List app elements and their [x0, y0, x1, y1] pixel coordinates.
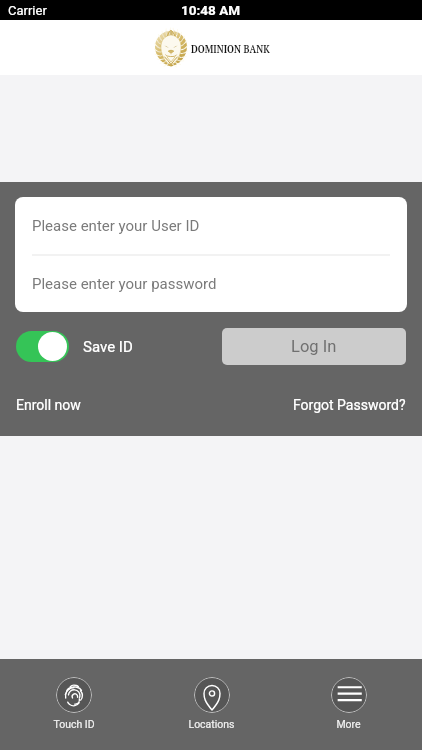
- button[interactable]: Please enter your password: [15, 256, 407, 312]
- button[interactable]: Enroll now: [16, 397, 81, 413]
- staticText: Carrier: [8, 3, 47, 18]
- staticText: DOMINION BANK: [191, 40, 249, 54]
- staticText: Save ID: [83, 338, 133, 356]
- staticText: Forgot Password?: [293, 397, 406, 413]
- staticText: Please enter your User ID: [32, 217, 200, 235]
- staticText: Enroll now: [16, 397, 81, 413]
- staticText: 10:48 AM: [181, 2, 241, 18]
- staticText: Log In: [291, 337, 337, 356]
- staticText: More: [336, 718, 361, 730]
- button[interactable]: Save ID: [16, 331, 133, 362]
- staticText: Please enter your password: [32, 275, 217, 293]
- staticText: Locations: [188, 718, 235, 730]
- button[interactable]: Log In: [222, 328, 406, 365]
- button[interactable]: Please enter your User ID: [15, 197, 407, 254]
- button[interactable]: Locations: [143, 659, 280, 730]
- button[interactable]: Forgot Password?: [293, 397, 406, 413]
- button[interactable]: More: [280, 659, 417, 730]
- staticText: Touch ID: [53, 718, 95, 730]
- button[interactable]: Touch ID: [5, 659, 143, 730]
